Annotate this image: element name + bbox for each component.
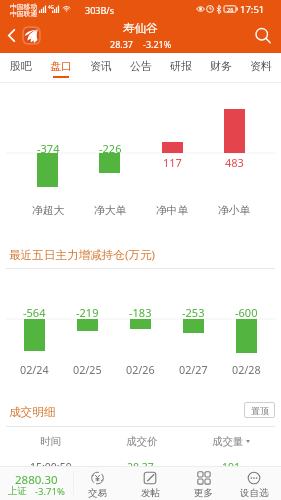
staticText: 28.37 (127, 460, 154, 474)
staticText: 17:51 (240, 3, 265, 16)
button[interactable]: 盘口 (41, 53, 81, 82)
button[interactable]: Back (0, 18, 22, 53)
button[interactable]: 设自选 (228, 466, 280, 500)
button[interactable]: 资料 (241, 53, 281, 82)
staticText: 最近五日主力增减持仓(万元) (9, 247, 156, 263)
staticText: 上证 (8, 485, 27, 497)
staticText: 117 (163, 155, 182, 170)
staticText: -226 (99, 141, 122, 156)
staticText: 发帖 (141, 487, 160, 499)
staticText: 净超大 (32, 204, 65, 218)
staticText: -3.21% (143, 38, 172, 50)
staticText: 26 (227, 6, 234, 13)
button[interactable]: 更多 (177, 466, 229, 500)
staticText: -374 (37, 141, 60, 156)
staticText: 设自选 (240, 487, 269, 499)
staticText: 4G (48, 4, 54, 10)
staticText: 寿仙谷 (123, 21, 158, 35)
staticText: 时间 (40, 435, 61, 448)
staticText: 483 (225, 155, 244, 170)
staticText: -253 (182, 305, 205, 320)
staticText: -3.71% (35, 485, 65, 498)
staticText: 研报 (170, 59, 192, 73)
button[interactable]: 公告 (121, 53, 161, 82)
staticText: 02/28 (232, 362, 261, 377)
button[interactable]: Search (245, 18, 281, 53)
staticText: -219 (76, 305, 99, 320)
staticText: 中国联通 (10, 9, 38, 18)
staticText: 02/24 (20, 362, 49, 377)
staticText: 交易 (88, 487, 107, 499)
staticText: -183 (129, 305, 152, 320)
button[interactable]: 交易 (71, 466, 123, 500)
staticText: 成交明细 (9, 405, 56, 420)
button[interactable]: East Money logo (21, 25, 42, 46)
staticText: 成交价 (126, 435, 158, 448)
staticText: 2880.30 (15, 472, 58, 488)
button[interactable]: 资讯 (81, 53, 121, 82)
staticText: 02/27 (179, 362, 208, 377)
staticText: 中国移动 (10, 2, 38, 11)
button[interactable]: 发帖 (124, 466, 176, 500)
staticText: 置顶 (251, 405, 269, 416)
staticText: 盘口 (50, 59, 72, 73)
staticText: 股吧 (10, 59, 32, 73)
staticText: 净小单 (218, 204, 251, 218)
staticText: 公告 (130, 59, 152, 73)
button[interactable]: 研报 (161, 53, 201, 82)
staticText: 02/25 (73, 362, 102, 377)
staticText: -600 (235, 305, 258, 320)
button[interactable]: 股吧 (0, 53, 41, 82)
staticText: 净大单 (94, 204, 127, 218)
staticText: 303B/s (85, 4, 114, 16)
staticText: 28.37 (110, 38, 134, 50)
staticText: 资讯 (90, 59, 112, 73)
button[interactable]: 2880.30 (0, 466, 72, 500)
staticText: 191 (222, 460, 241, 474)
staticText: -564 (23, 305, 46, 320)
staticText: 财务 (210, 59, 232, 73)
button[interactable]: 置顶 (244, 402, 275, 418)
staticText: 成交量 (212, 435, 244, 448)
staticText: 净中单 (156, 204, 189, 218)
button[interactable]: 财务 (201, 53, 241, 82)
staticText: 更多 (194, 487, 213, 499)
staticText: 资料 (250, 59, 272, 73)
staticText: 02/26 (126, 362, 155, 377)
staticText: 15:00:59 (30, 460, 72, 474)
